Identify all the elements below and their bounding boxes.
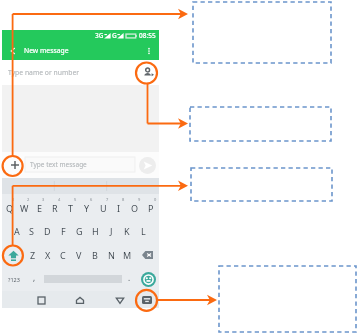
staticText: Y bbox=[84, 202, 90, 214]
staticText: M bbox=[123, 249, 132, 261]
staticText: 8 bbox=[122, 197, 125, 202]
button[interactable]: B bbox=[87, 243, 103, 267]
button[interactable]: S bbox=[24, 219, 39, 243]
button[interactable]: Q bbox=[2, 194, 17, 219]
staticText: Type name or number bbox=[8, 68, 80, 77]
staticText: U bbox=[100, 202, 107, 214]
staticText: 5 bbox=[74, 197, 77, 202]
button[interactable]: Z bbox=[25, 243, 40, 267]
button[interactable]: Emoji bbox=[138, 267, 159, 291]
staticText: K bbox=[124, 225, 130, 237]
staticText: H bbox=[92, 225, 99, 237]
button[interactable]: G bbox=[71, 219, 87, 243]
button[interactable]: U bbox=[95, 194, 111, 219]
staticText: T bbox=[68, 202, 74, 214]
staticText: ?123 bbox=[8, 276, 20, 283]
button[interactable]: . bbox=[120, 267, 138, 291]
button[interactable]: More options bbox=[144, 46, 154, 56]
staticText: C bbox=[60, 249, 66, 261]
staticText: G bbox=[112, 31, 117, 40]
button[interactable]: Shift bbox=[2, 243, 25, 267]
staticText: 9 bbox=[138, 197, 141, 202]
staticText: R bbox=[52, 202, 58, 214]
button[interactable]: Send bbox=[139, 157, 156, 174]
button[interactable]: Attach bbox=[8, 158, 22, 172]
button[interactable]: H bbox=[87, 219, 103, 243]
button[interactable]: M bbox=[119, 243, 135, 267]
button[interactable]: J bbox=[103, 219, 119, 243]
button[interactable]: Type text message bbox=[25, 157, 135, 172]
button[interactable]: R bbox=[47, 194, 63, 219]
button[interactable]: ?123 bbox=[3, 267, 24, 291]
button[interactable]: K bbox=[119, 219, 135, 243]
staticText: . bbox=[128, 272, 131, 283]
staticText: Type text message bbox=[30, 160, 87, 169]
staticText: 3 bbox=[42, 197, 45, 202]
staticText: 3G bbox=[95, 31, 104, 40]
staticText: B bbox=[92, 249, 98, 261]
staticText: 2 bbox=[27, 197, 30, 202]
staticText: S bbox=[29, 225, 34, 237]
staticText: Z bbox=[30, 249, 36, 261]
button[interactable]: T bbox=[63, 194, 79, 219]
button[interactable]: X bbox=[40, 243, 55, 267]
staticText: A bbox=[14, 225, 20, 237]
button[interactable]: L bbox=[135, 219, 151, 243]
button[interactable]: F bbox=[55, 219, 71, 243]
button[interactable]: Backspace bbox=[135, 243, 159, 267]
button[interactable]: V bbox=[71, 243, 87, 267]
button[interactable]: Home bbox=[73, 293, 87, 307]
staticText: G bbox=[76, 225, 83, 237]
staticText: 08:55 bbox=[139, 31, 156, 40]
staticText: P bbox=[148, 202, 154, 214]
staticText: F bbox=[61, 225, 66, 237]
button[interactable]: , bbox=[26, 267, 42, 291]
staticText: J bbox=[110, 225, 113, 237]
staticText: 4 bbox=[58, 197, 61, 202]
button[interactable]: C bbox=[55, 243, 71, 267]
button[interactable]: D bbox=[39, 219, 55, 243]
button[interactable]: Back bbox=[113, 293, 127, 307]
staticText: New message bbox=[24, 46, 69, 55]
staticText: , bbox=[33, 272, 36, 283]
staticText: D bbox=[44, 225, 51, 237]
button[interactable]: I bbox=[111, 194, 127, 219]
button[interactable]: A bbox=[9, 219, 24, 243]
staticText: 1 bbox=[12, 197, 15, 202]
button[interactable]: Hide keyboard bbox=[139, 292, 154, 307]
staticText: 7 bbox=[106, 197, 109, 202]
staticText: E bbox=[37, 202, 43, 214]
button[interactable]: Y bbox=[79, 194, 95, 219]
staticText: Q bbox=[6, 202, 14, 214]
staticText: V bbox=[76, 249, 82, 261]
button[interactable]: Add contact bbox=[143, 67, 154, 78]
staticText: I bbox=[117, 202, 121, 214]
button[interactable]: E bbox=[32, 194, 47, 219]
staticText: W bbox=[20, 202, 29, 214]
button[interactable]: O bbox=[127, 194, 143, 219]
staticText: X bbox=[45, 249, 51, 261]
button[interactable]: Back bbox=[7, 45, 19, 57]
staticText: 6 bbox=[90, 197, 93, 202]
staticText: L bbox=[141, 225, 146, 237]
staticText: 0 bbox=[154, 197, 157, 202]
button[interactable]: W bbox=[17, 194, 32, 219]
button[interactable]: N bbox=[103, 243, 119, 267]
staticText: O bbox=[131, 202, 139, 214]
button[interactable]: P bbox=[143, 194, 159, 219]
staticText: N bbox=[108, 249, 115, 261]
button[interactable]: Recents bbox=[34, 293, 48, 307]
button[interactable]: Space bbox=[42, 267, 123, 291]
